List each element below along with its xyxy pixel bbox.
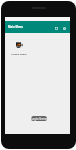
button[interactable]: Login Screen: [31, 116, 47, 121]
staticText: Main Menu: [8, 25, 24, 29]
button[interactable]: Screen Share: [9, 42, 29, 55]
staticText: Login Screen: [31, 117, 47, 121]
button[interactable]: Cast: [52, 25, 61, 32]
button[interactable]: Account: [61, 25, 68, 32]
staticText: Screen Share: [11, 52, 27, 55]
